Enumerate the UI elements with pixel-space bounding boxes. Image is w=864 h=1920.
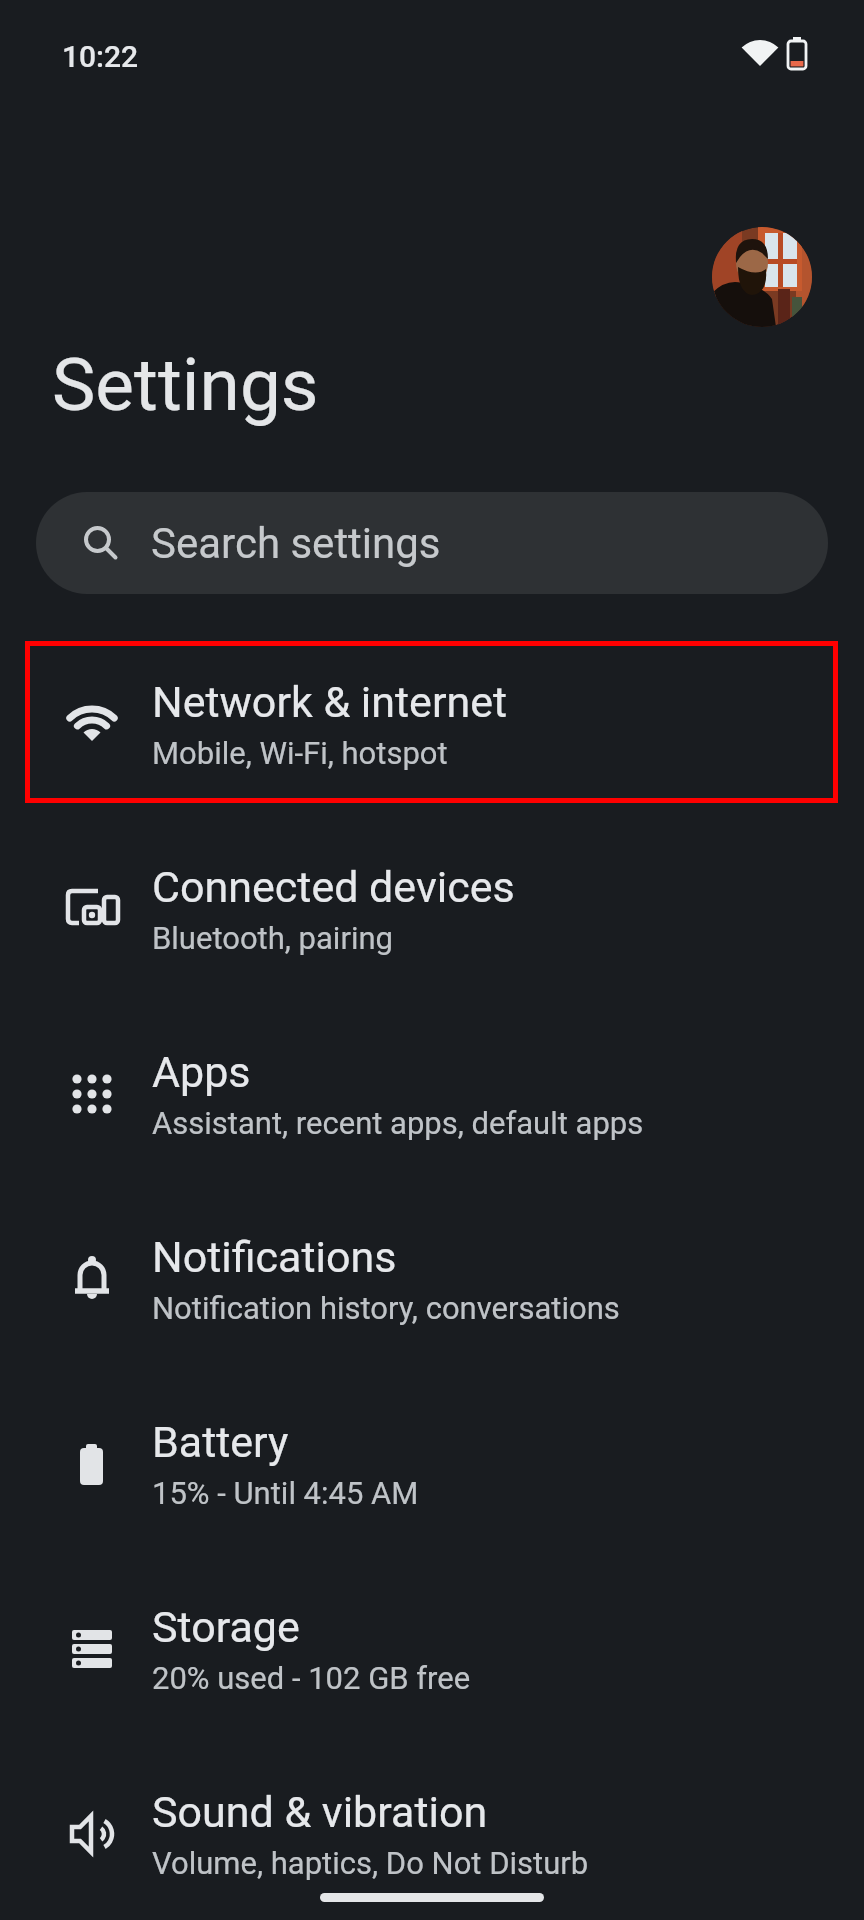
- staticText: Sound & vibration: [152, 1787, 488, 1837]
- button[interactable]: [712, 227, 812, 327]
- button[interactable]: Sound & vibration: [0, 1741, 864, 1920]
- button[interactable]: Storage: [0, 1556, 864, 1741]
- staticText: Notifications: [152, 1232, 397, 1282]
- button[interactable]: Battery: [0, 1371, 864, 1556]
- button[interactable]: Search settings: [36, 492, 828, 594]
- staticText: Network & internet: [152, 677, 508, 727]
- staticText: Connected devices: [152, 862, 515, 912]
- staticText: 20% used - 102 GB free: [152, 1660, 471, 1696]
- staticText: Settings: [52, 342, 319, 428]
- staticText: Mobile, Wi-Fi, hotspot: [152, 735, 448, 771]
- staticText: Bluetooth, pairing: [152, 920, 393, 956]
- staticText: Storage: [152, 1602, 300, 1652]
- staticText: Search settings: [151, 519, 441, 568]
- button[interactable]: Notifications: [0, 1186, 864, 1371]
- staticText: 10:22: [62, 39, 139, 74]
- button[interactable]: Network & internet: [0, 631, 864, 816]
- button[interactable]: Connected devices: [0, 816, 864, 1001]
- staticText: Battery: [152, 1417, 289, 1467]
- staticText: Volume, haptics, Do Not Disturb: [152, 1845, 589, 1881]
- staticText: Notification history, conversations: [152, 1290, 620, 1326]
- staticText: Apps: [152, 1047, 251, 1097]
- staticText: 15% - Until 4:45 AM: [152, 1475, 419, 1511]
- staticText: Assistant, recent apps, default apps: [152, 1105, 644, 1141]
- button[interactable]: Apps: [0, 1001, 864, 1186]
